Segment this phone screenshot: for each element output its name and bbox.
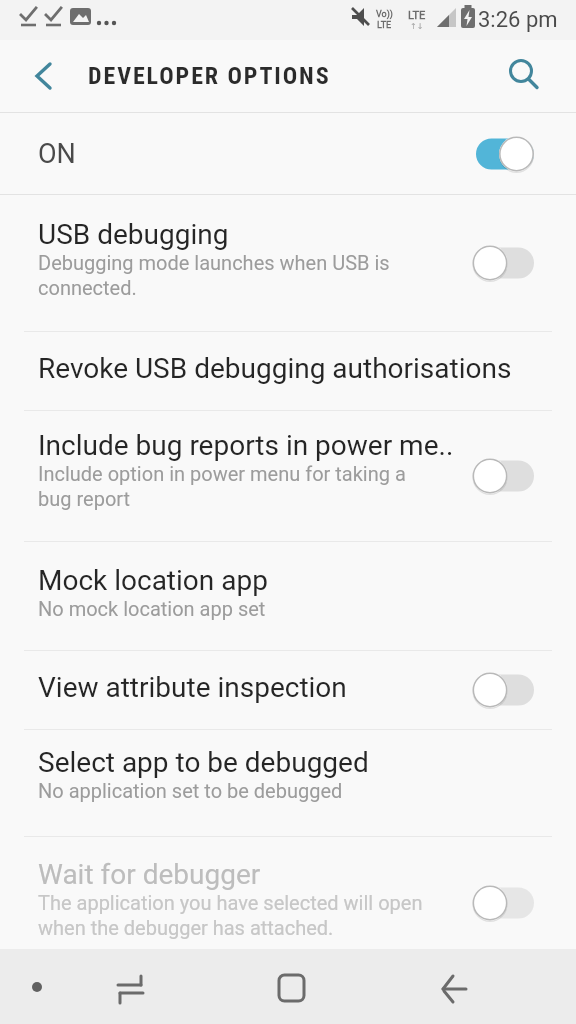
staticText: ON [38, 138, 76, 170]
button[interactable]: Wait for debugger [0, 837, 576, 949]
staticText: No mock location app set [38, 597, 266, 620]
button[interactable] [502, 53, 548, 99]
button[interactable]: Select app to be debugged [0, 730, 576, 836]
button[interactable]: View attribute inspection [0, 651, 576, 729]
button[interactable] [144, 949, 288, 1024]
staticText: Select app to be debugged [38, 746, 369, 779]
staticText: No application set to be debugged [38, 779, 343, 802]
staticText: Include bug reports in power me.. [38, 429, 454, 462]
button[interactable]: Revoke USB debugging authorisations [0, 332, 576, 410]
staticText: USB debugging [38, 218, 229, 251]
staticText: Debugging mode launches when USB is conn… [38, 251, 390, 300]
staticText: 3:26 pm [478, 7, 558, 33]
button[interactable]: Mock location app [0, 542, 576, 650]
button[interactable]: Include bug reports in power me.. [0, 411, 576, 541]
staticText: The application you have selected will o… [38, 891, 423, 940]
button[interactable] [432, 949, 576, 1024]
staticText: Wait for debugger [38, 858, 261, 891]
staticText: Revoke USB debugging authorisations [38, 352, 512, 385]
button[interactable]: ON [0, 113, 576, 194]
staticText: LTE [408, 9, 426, 22]
staticText: Vo)) [376, 9, 393, 20]
button[interactable] [288, 949, 432, 1024]
staticText: ↑↓ [410, 22, 424, 31]
button[interactable]: USB debugging [0, 195, 576, 331]
staticText: Include option in power menu for taking … [38, 462, 406, 511]
staticText: View attribute inspection [38, 671, 347, 704]
staticText: LTE [377, 20, 392, 31]
button[interactable] [20, 53, 66, 99]
staticText: DEVELOPER OPTIONS [88, 62, 331, 90]
staticText: Mock location app [38, 564, 268, 597]
button[interactable] [0, 949, 144, 1024]
